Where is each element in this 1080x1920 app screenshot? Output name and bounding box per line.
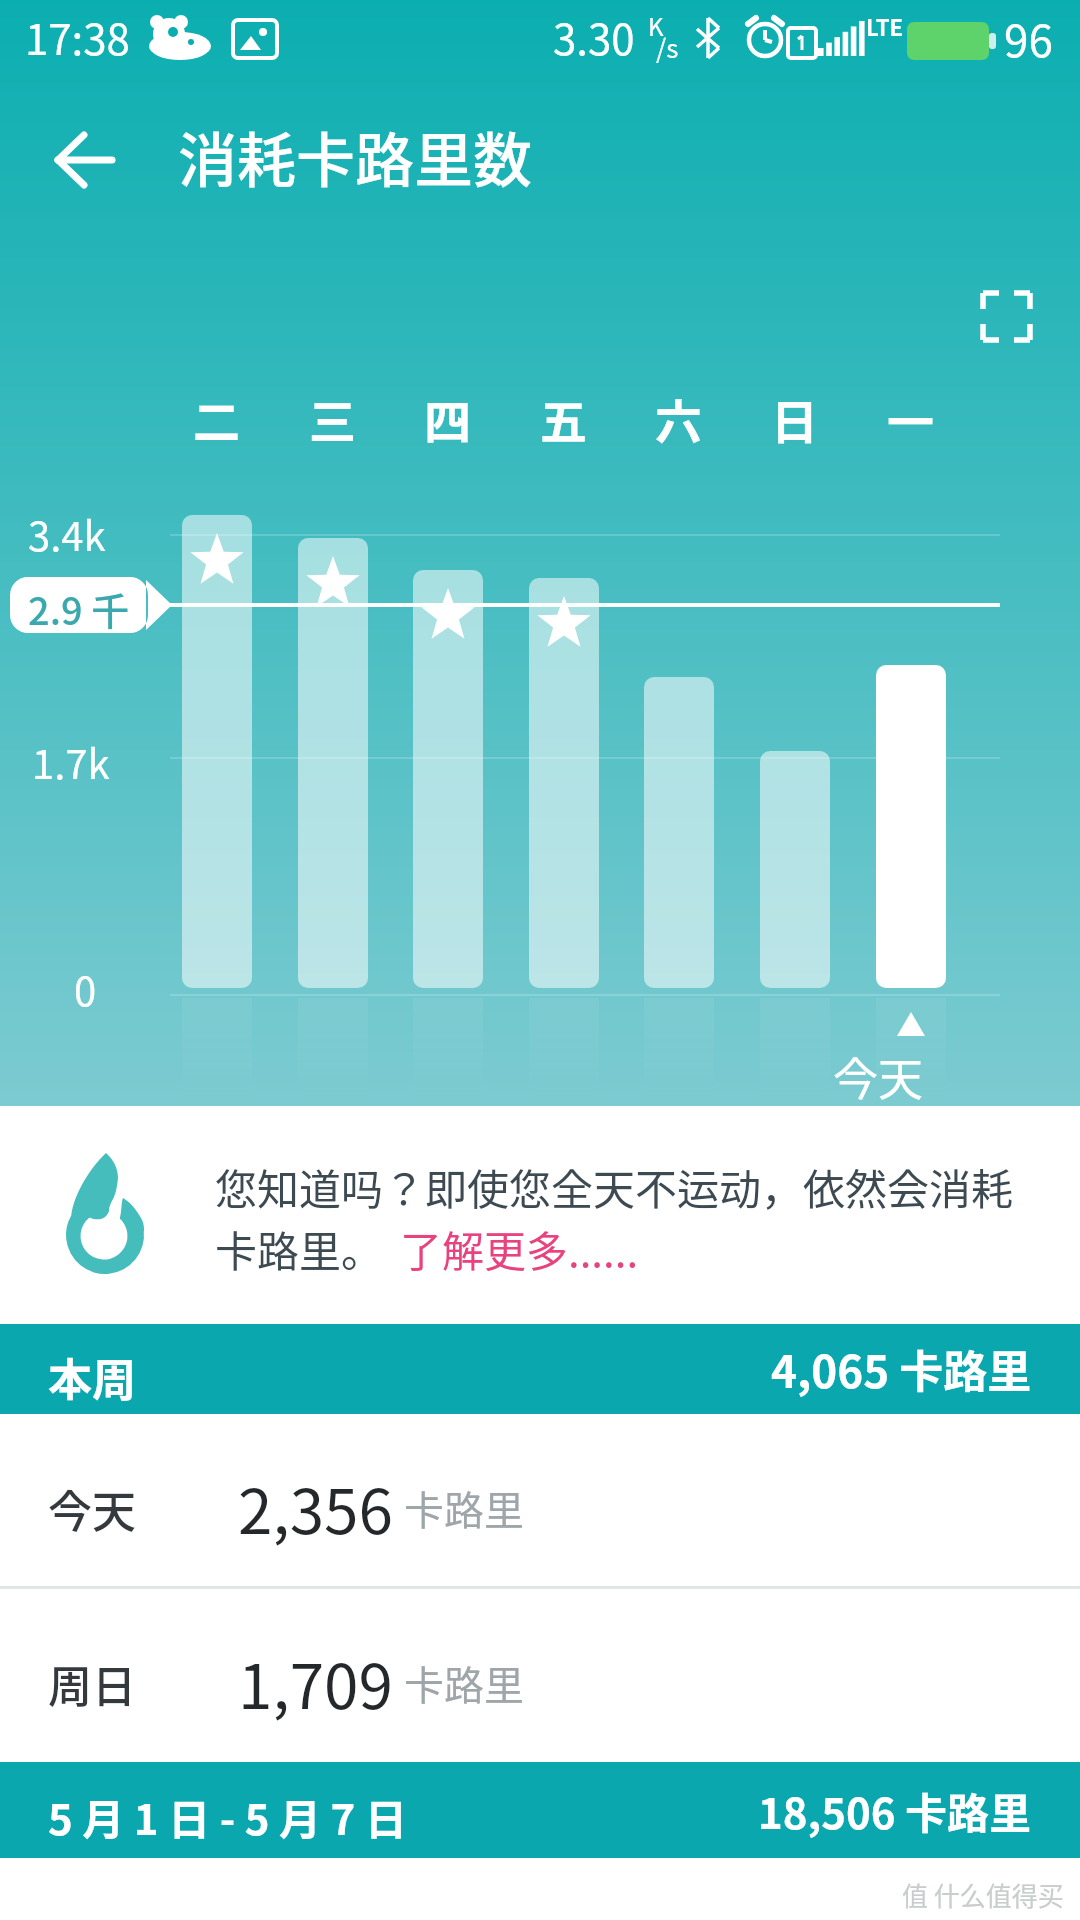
staticText: 三 (309, 384, 356, 452)
staticText: 卡路里 (404, 1479, 524, 1537)
staticText: 六 (655, 384, 702, 452)
staticText: 今天 (833, 1044, 924, 1109)
staticText: 一 (887, 384, 934, 452)
staticText: 2,356 (238, 1462, 393, 1552)
staticText: 4,065 卡路里 (771, 1337, 1032, 1401)
staticText: 17:38 (25, 6, 130, 67)
staticText: 本周 (48, 1345, 136, 1409)
staticText: 值 什么值得买 (902, 1876, 1064, 1914)
button[interactable]: 了解更多...... (400, 1218, 639, 1279)
staticText: 3.4k (28, 505, 106, 563)
staticText: LTE (866, 10, 904, 42)
staticText: 18,506 卡路里 (758, 1780, 1032, 1841)
button[interactable]: 本周 (0, 1324, 1080, 1414)
staticText: 今天 (48, 1477, 136, 1541)
staticText: 1,709 (238, 1637, 393, 1727)
staticText: 日 (771, 384, 818, 452)
staticText: 5 月 1 日 - 5 月 7 日 (48, 1786, 407, 1847)
staticText: 周日 (48, 1652, 136, 1716)
button[interactable] (40, 120, 130, 200)
staticText: 0 (74, 960, 97, 1018)
staticText: 消耗卡路里数 (178, 114, 533, 199)
staticText: 四 (424, 384, 471, 452)
staticText: /s (656, 28, 679, 66)
staticText: 2.9 千 (28, 581, 130, 636)
staticText: 五 (540, 384, 587, 452)
staticText: 96 (1004, 6, 1053, 70)
staticText: 二 (193, 384, 240, 452)
staticText: 卡路里 (404, 1654, 524, 1712)
button[interactable]: 周日 (0, 1589, 1080, 1762)
button[interactable]: 5 月 1 日 - 5 月 7 日 (0, 1762, 1080, 1858)
button[interactable] (970, 280, 1045, 355)
staticText: 卡路里。 (215, 1218, 384, 1279)
staticText: 了解更多...... (400, 1218, 639, 1279)
staticText: K (648, 8, 664, 43)
button[interactable]: 今天 (0, 1414, 1080, 1586)
staticText: 1.7k (32, 733, 110, 791)
staticText: 您知道吗？即使您全天不运动，依然会消耗 (215, 1156, 1014, 1217)
staticText: 3.30 (553, 6, 635, 67)
